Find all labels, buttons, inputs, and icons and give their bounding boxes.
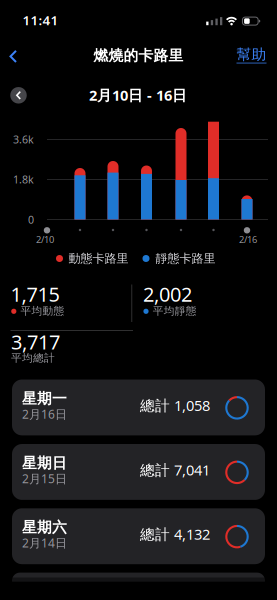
staticText: 3.6k	[13, 132, 34, 146]
staticText: 0	[28, 212, 34, 227]
staticText: 2月10日 - 16日	[89, 85, 187, 105]
button[interactable]: 星期一	[12, 379, 265, 435]
staticText: 平均動態	[20, 304, 64, 317]
staticText: 2,002	[143, 281, 192, 307]
staticText: 11:41	[22, 11, 58, 29]
staticText: 星期六	[22, 518, 67, 536]
staticText: 3,717	[11, 328, 60, 355]
staticText: 幫助	[236, 45, 266, 63]
button[interactable]: 星期六	[12, 508, 265, 564]
button[interactable]: 星期日	[12, 444, 265, 500]
button[interactable]: Back	[7, 49, 19, 63]
staticText: 動態卡路里	[69, 251, 129, 266]
staticText: 星期日	[22, 454, 67, 472]
staticText: 2月14日	[22, 535, 67, 551]
staticText: 總計 7,041	[140, 460, 210, 480]
staticText: 1,715	[10, 281, 59, 307]
staticText: 1.8k	[13, 172, 34, 186]
staticText: 星期一	[22, 389, 67, 407]
staticText: 2/10	[36, 233, 54, 246]
staticText: 總計 4,132	[140, 524, 210, 544]
button[interactable]: 幫助	[0, 0, 277, 600]
staticText: 總計 1,058	[140, 396, 210, 415]
staticText: 2/16	[239, 233, 257, 246]
staticText: 2月15日	[22, 470, 67, 486]
staticText: 平均靜態	[153, 304, 197, 317]
staticText: 平均總計	[11, 351, 55, 364]
staticText: 靜態卡路里	[155, 251, 215, 266]
staticText: 燃燒的卡路里	[93, 46, 183, 64]
button[interactable]: Previous week	[10, 87, 27, 103]
staticText: 2月16日	[22, 406, 67, 422]
